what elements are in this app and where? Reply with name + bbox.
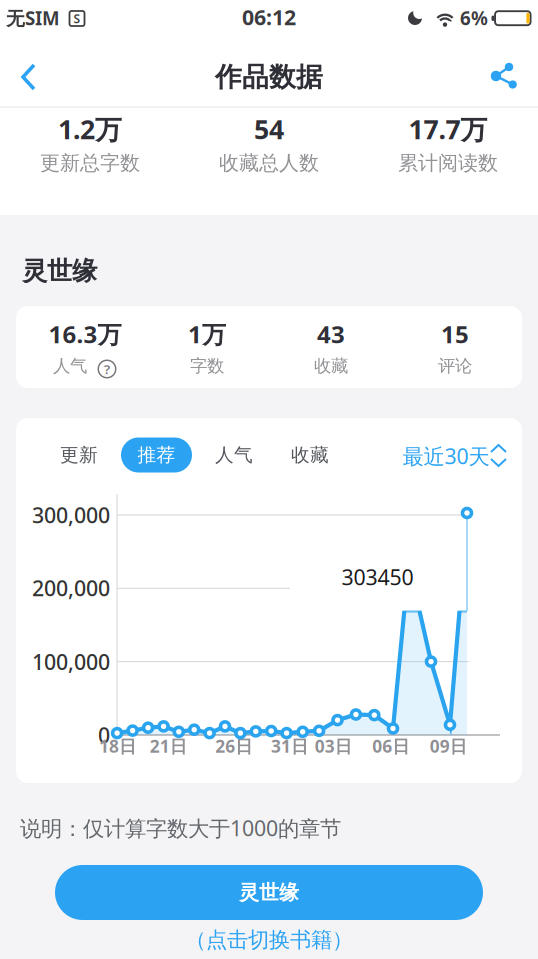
staticText: 作品数据	[215, 61, 323, 93]
staticText: 收藏总人数	[219, 151, 319, 175]
button[interactable]: Share	[486, 58, 522, 94]
staticText: 06:12	[242, 3, 296, 31]
staticText: 更新总字数	[40, 151, 140, 175]
staticText: 收藏	[291, 443, 329, 466]
button[interactable]: 最近30天	[400, 439, 510, 473]
button[interactable]: 灵世缘	[55, 865, 483, 920]
staticText: 6%	[460, 6, 488, 30]
button[interactable]: Back	[8, 57, 48, 97]
button[interactable]: 人气说明	[97, 359, 116, 378]
staticText: 09日	[430, 734, 467, 757]
staticText: 评论	[438, 355, 472, 377]
staticText: 43	[317, 318, 345, 350]
staticText: 灵世缘	[239, 880, 299, 905]
staticText: 无SIM	[6, 6, 60, 30]
staticText: 累计阅读数	[398, 151, 498, 175]
staticText: 300,000	[32, 501, 110, 529]
staticText: 0	[98, 721, 110, 749]
staticText: 推荐	[137, 443, 175, 466]
staticText: S	[73, 10, 80, 26]
button[interactable]: （点击切换书籍）	[185, 927, 353, 953]
button[interactable]: 推荐	[121, 437, 192, 472]
staticText: 收藏	[314, 355, 348, 377]
staticText: 17.7万	[408, 111, 487, 147]
staticText: 54	[254, 111, 284, 147]
staticText: 15	[441, 318, 469, 350]
staticText: 灵世缘	[22, 255, 97, 286]
staticText: 31日	[271, 734, 308, 757]
staticText: 06日	[372, 734, 409, 757]
button[interactable]: 收藏	[285, 437, 335, 472]
staticText: 21日	[150, 734, 187, 757]
staticText: 人气	[53, 355, 87, 377]
staticText: 03日	[315, 734, 352, 757]
button[interactable]: 人气	[209, 437, 259, 472]
staticText: 200,000	[32, 574, 110, 602]
button[interactable]: 更新	[54, 437, 104, 472]
staticText: 16.3万	[48, 318, 121, 350]
staticText: ?	[104, 360, 110, 378]
staticText: 303450	[341, 563, 413, 591]
staticText: 1万	[188, 318, 226, 350]
staticText: 说明：仅计算字数大于1000的章节	[20, 814, 341, 842]
staticText: 26日	[215, 734, 252, 757]
staticText: 更新	[60, 443, 98, 466]
staticText: 18日	[99, 734, 136, 757]
staticText: 人气	[215, 443, 253, 466]
staticText: （点击切换书籍）	[185, 927, 353, 953]
staticText: 最近30天	[402, 442, 489, 470]
staticText: 字数	[190, 355, 224, 377]
staticText: 1.2万	[58, 111, 122, 147]
staticText: 100,000	[32, 647, 110, 676]
